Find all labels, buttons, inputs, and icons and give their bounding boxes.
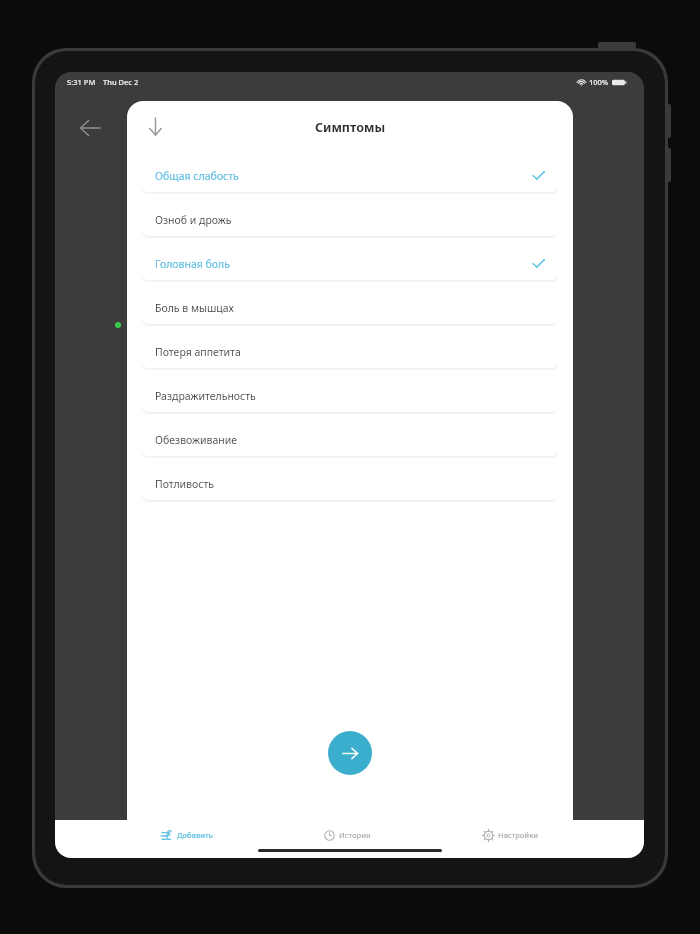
staticText: Потливость — [155, 477, 215, 491]
button[interactable]: Потеря аппетита — [141, 335, 559, 368]
staticText: Добавить — [177, 830, 213, 840]
staticText: Раздражительность — [155, 389, 256, 403]
button[interactable]: Обезвоживание — [141, 423, 559, 456]
staticText: Общая слабость — [155, 169, 239, 183]
button[interactable]: Next — [328, 731, 372, 775]
staticText: Thu Dec 2 — [103, 77, 139, 87]
button[interactable]: Настройки — [477, 824, 545, 846]
button[interactable]: Collapse — [135, 107, 175, 147]
staticText: 100% — [589, 77, 609, 87]
staticText: Симптомы — [127, 119, 573, 136]
button[interactable]: Раздражительность — [141, 379, 559, 412]
button[interactable]: Потливость — [141, 467, 559, 500]
button[interactable]: Головная боль — [141, 247, 559, 280]
staticText: Обезвоживание — [155, 433, 238, 447]
staticText: 5:31 PM — [67, 77, 96, 87]
staticText: Головная боль — [155, 257, 230, 271]
button[interactable]: Back — [63, 102, 115, 154]
button[interactable]: Добавить — [155, 824, 219, 846]
button[interactable]: Боль в мышцах — [141, 291, 559, 324]
button[interactable]: Озноб и дрожь — [141, 203, 559, 236]
staticText: Настройки — [498, 830, 539, 840]
button[interactable]: Общая слабость — [141, 159, 559, 192]
staticText: Боль в мышцах — [155, 301, 234, 315]
staticText: Потеря аппетита — [155, 345, 241, 359]
staticText: История — [339, 830, 371, 840]
button[interactable]: История — [318, 824, 377, 846]
staticText: Озноб и дрожь — [155, 213, 232, 227]
